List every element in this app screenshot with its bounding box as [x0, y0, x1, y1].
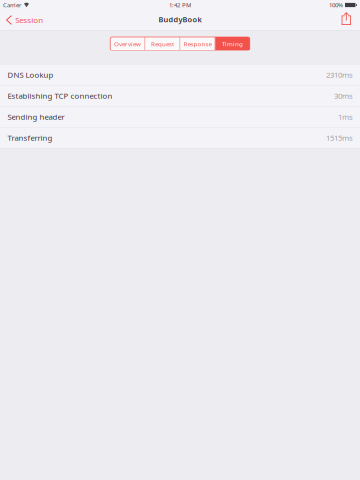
- staticText: 100%: [329, 1, 343, 9]
- button[interactable]: Share: [336, 10, 360, 30]
- staticText: Timing: [222, 40, 243, 48]
- staticText: Establishing TCP connection: [7, 90, 112, 101]
- button[interactable]: Establishing TCP connection: [0, 85, 360, 106]
- staticText: 1ms: [338, 111, 353, 122]
- staticText: Overview: [114, 40, 141, 48]
- staticText: 30ms: [334, 90, 353, 101]
- button[interactable]: Session: [0, 10, 49, 30]
- button[interactable]: DNS Lookup: [0, 64, 360, 85]
- staticText: Response: [183, 40, 211, 48]
- button[interactable]: Sending header: [0, 106, 360, 127]
- button[interactable]: Request: [145, 37, 180, 50]
- button[interactable]: Timing: [215, 37, 250, 50]
- button[interactable]: Overview: [110, 37, 145, 50]
- staticText: Sending header: [7, 111, 64, 122]
- staticText: 1515ms: [326, 132, 353, 143]
- staticText: DNS Lookup: [7, 69, 53, 80]
- staticText: Transferring: [7, 132, 52, 143]
- staticText: Session: [15, 15, 43, 25]
- staticText: 2310ms: [326, 69, 353, 80]
- staticText: Request: [151, 40, 174, 48]
- staticText: 1:42 PM: [169, 1, 191, 9]
- staticText: Carrier: [3, 1, 21, 9]
- staticText: BuddyBook: [158, 14, 201, 24]
- button[interactable]: Transferring: [0, 127, 360, 148]
- button[interactable]: Response: [180, 37, 215, 50]
